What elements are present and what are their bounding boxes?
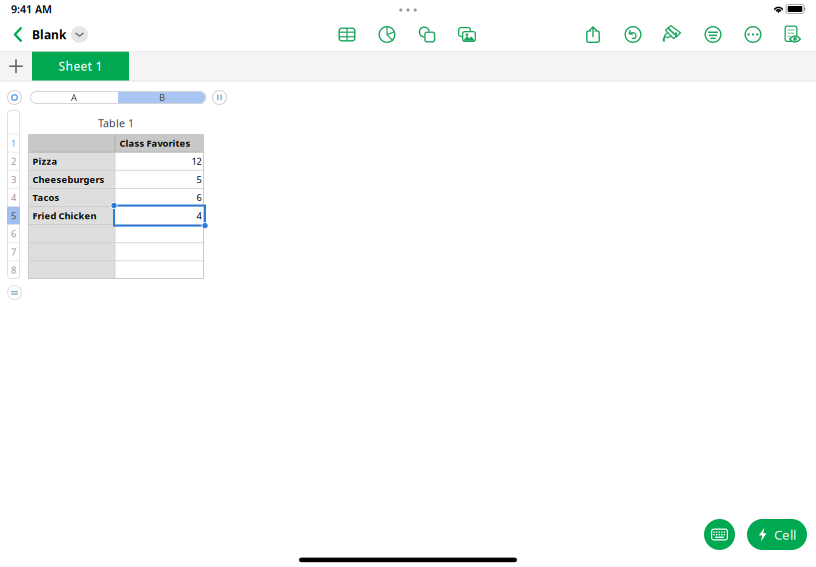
- staticText: 8: [11, 264, 16, 276]
- staticText: 12: [191, 155, 201, 167]
- staticText: Table 1: [98, 116, 134, 130]
- staticText: 2: [11, 155, 16, 167]
- button[interactable]: Insert media: [447, 18, 487, 51]
- staticText: 6: [196, 191, 201, 204]
- button[interactable]: Select all cells: [7, 90, 22, 105]
- staticText: 5: [196, 173, 201, 185]
- button[interactable]: Show keyboard: [704, 519, 735, 550]
- staticText: Blank: [32, 26, 66, 42]
- button[interactable]: Back: [4, 18, 32, 51]
- staticText: 4: [196, 209, 201, 222]
- staticText: A: [71, 91, 77, 104]
- button[interactable]: Organize: [693, 18, 733, 51]
- button[interactable]: Insert table: [327, 18, 367, 51]
- staticText: Fried Chicken: [32, 209, 96, 222]
- button[interactable]: Blank: [32, 18, 88, 51]
- button[interactable]: Insert formula: [7, 285, 22, 300]
- staticText: 4: [11, 191, 16, 204]
- button[interactable]: Format: [653, 18, 693, 51]
- staticText: Cell: [774, 526, 796, 543]
- button[interactable]: Undo: [613, 18, 653, 51]
- staticText: Sheet 1: [58, 58, 102, 74]
- staticText: Class Favorites: [119, 137, 190, 149]
- staticText: 1: [11, 137, 16, 149]
- staticText: Pizza: [32, 155, 57, 167]
- button[interactable]: Document options: [773, 18, 813, 51]
- button[interactable]: More: [733, 18, 773, 51]
- staticText: 3: [11, 173, 16, 185]
- staticText: 7: [11, 246, 16, 258]
- staticText: Cheeseburgers: [32, 173, 104, 185]
- button[interactable]: Column options: [212, 90, 227, 105]
- staticText: Tacos: [32, 191, 59, 204]
- button[interactable]: Insert chart: [367, 18, 407, 51]
- staticText: B: [159, 91, 165, 104]
- button[interactable]: Share: [573, 18, 613, 51]
- staticText: 9:41 AM: [11, 2, 52, 16]
- staticText: 5: [11, 209, 16, 222]
- staticText: 6: [11, 227, 16, 240]
- button[interactable]: Add sheet: [0, 52, 32, 81]
- button[interactable]: Insert shape: [407, 18, 447, 51]
- button[interactable]: Sheet 1: [32, 52, 129, 81]
- button[interactable]: Cell: [747, 519, 807, 550]
